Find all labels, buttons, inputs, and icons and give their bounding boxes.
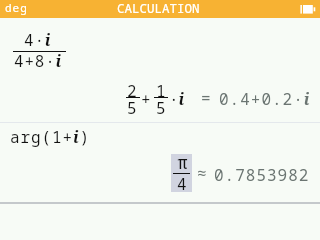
staticText: CALCULATION (117, 0, 200, 17)
staticText: 5 (127, 97, 137, 119)
staticText: 4+8·i (14, 50, 63, 72)
staticText: 4·i (24, 29, 52, 51)
button[interactable] (0, 18, 320, 122)
staticText: ·i (169, 88, 185, 110)
staticText: deg (5, 0, 28, 15)
staticText: ≈ (197, 162, 207, 184)
button[interactable] (0, 123, 320, 202)
staticText: 4 (177, 173, 187, 195)
staticText: = (201, 87, 211, 109)
staticText: arg(1+i) (10, 126, 91, 148)
button[interactable] (0, 203, 320, 240)
staticText: 2 (127, 80, 137, 102)
staticText: 0.4+0.2·i (219, 88, 311, 110)
staticText: 5 (156, 97, 166, 119)
staticText: + (141, 88, 151, 110)
staticText: π (177, 150, 188, 175)
staticText: 0.7853982 (214, 164, 310, 186)
staticText: 1 (156, 80, 166, 102)
